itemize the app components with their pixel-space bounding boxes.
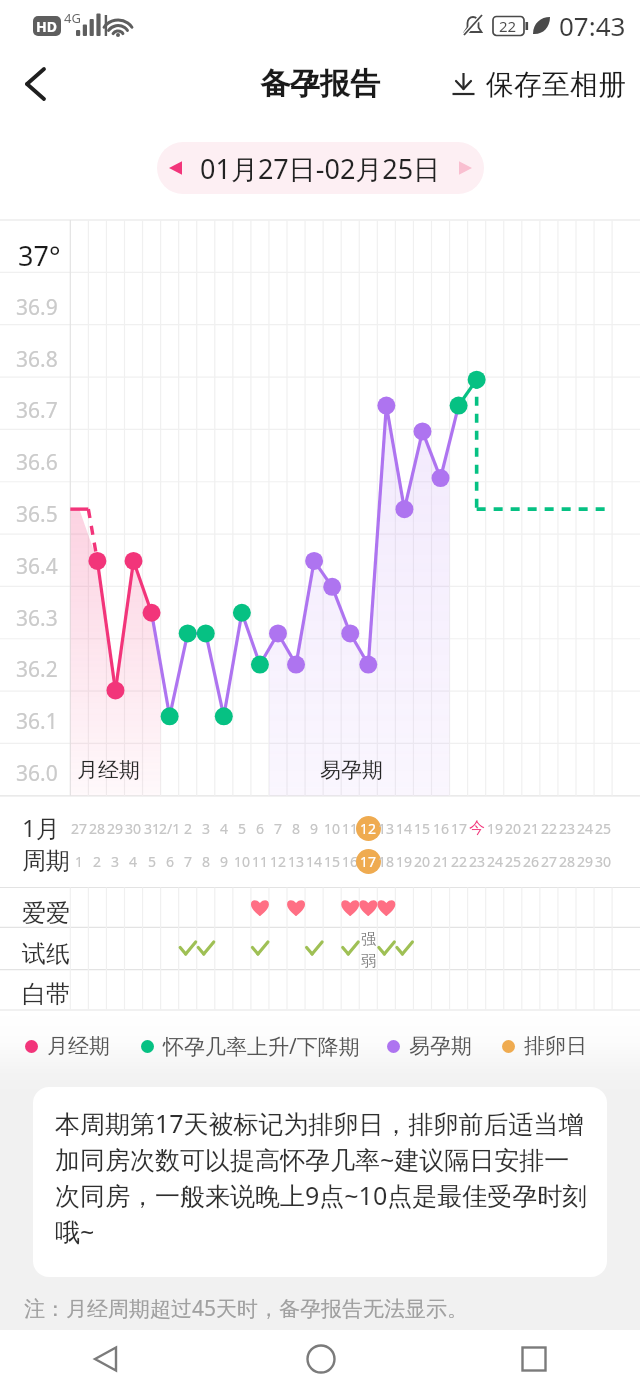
staticText: 36.3 bbox=[16, 604, 58, 633]
staticText: 30 bbox=[595, 852, 612, 871]
staticText: 易孕期 bbox=[320, 757, 383, 783]
staticText: 31 bbox=[144, 819, 161, 838]
staticText: 36.4 bbox=[16, 552, 58, 581]
staticText: 4 bbox=[220, 819, 229, 838]
staticText: 注：月经周期超过45天时，备孕报告无法显示。 bbox=[24, 1294, 469, 1323]
staticText: 白带 bbox=[22, 979, 70, 1009]
staticText: 36.9 bbox=[16, 293, 58, 322]
staticText: 8 bbox=[202, 852, 211, 871]
staticText: 5 bbox=[238, 819, 247, 838]
staticText: 7 bbox=[274, 819, 283, 838]
staticText: 8 bbox=[292, 819, 301, 838]
staticText: 36.7 bbox=[16, 396, 58, 425]
staticText: 20 bbox=[414, 852, 431, 871]
staticText: 7 bbox=[184, 852, 193, 871]
button[interactable]: Recents bbox=[427, 1330, 640, 1387]
staticText: 怀孕几率上升/下降期 bbox=[163, 1032, 360, 1061]
staticText: 5 bbox=[148, 852, 157, 871]
staticText: 3 bbox=[202, 819, 211, 838]
staticText: 27 bbox=[541, 852, 558, 871]
staticText: 24 bbox=[487, 852, 504, 871]
staticText: 25 bbox=[505, 852, 522, 871]
staticText: 30 bbox=[125, 819, 142, 838]
staticText: 12 bbox=[360, 819, 377, 838]
staticText: 22 bbox=[499, 16, 517, 36]
staticText: 36.2 bbox=[16, 655, 58, 684]
staticText: 01月27日-02月25日 bbox=[200, 150, 441, 187]
button[interactable]: 排卵日 bbox=[502, 1033, 587, 1059]
staticText: 16 bbox=[342, 852, 359, 871]
staticText: 弱 bbox=[361, 952, 376, 971]
staticText: 9 bbox=[310, 819, 319, 838]
staticText: 14 bbox=[306, 852, 323, 871]
staticText: 23 bbox=[559, 819, 576, 838]
staticText: 2 bbox=[93, 852, 102, 871]
staticText: 07:43 bbox=[559, 8, 626, 43]
staticText: 16 bbox=[433, 819, 450, 838]
staticText: 本周期第17天被标记为排卵日，排卵前后适当增加同房次数可以提高怀孕几率~建议隔日… bbox=[55, 1106, 590, 1249]
staticText: 6 bbox=[256, 819, 265, 838]
staticText: 37° bbox=[18, 237, 61, 273]
staticText: 15 bbox=[414, 819, 431, 838]
staticText: 13 bbox=[378, 819, 395, 838]
button[interactable]: Back bbox=[0, 1330, 214, 1387]
staticText: 36.8 bbox=[16, 345, 58, 374]
button[interactable]: 保存至相册 bbox=[448, 67, 628, 102]
staticText: 易孕期 bbox=[409, 1033, 472, 1059]
staticText: 26 bbox=[523, 852, 540, 871]
staticText: 36.0 bbox=[16, 759, 58, 788]
button[interactable]: Home bbox=[214, 1330, 427, 1387]
staticText: 20 bbox=[505, 819, 522, 838]
staticText: 36.5 bbox=[16, 500, 58, 529]
button[interactable]: 月经期 bbox=[25, 1033, 110, 1059]
staticText: 3 bbox=[111, 852, 120, 871]
staticText: 17 bbox=[360, 852, 377, 871]
staticText: 备孕报告 bbox=[260, 65, 380, 103]
staticText: 19 bbox=[487, 819, 504, 838]
staticText: 18 bbox=[378, 852, 395, 871]
staticText: 24 bbox=[577, 819, 594, 838]
staticText: 排卵日 bbox=[524, 1033, 587, 1059]
staticText: 21 bbox=[523, 819, 540, 838]
staticText: 11 bbox=[252, 852, 269, 871]
staticText: 月经期 bbox=[47, 1033, 110, 1059]
staticText: 试纸 bbox=[22, 939, 70, 969]
staticText: 19 bbox=[396, 852, 413, 871]
staticText: 2/1 bbox=[159, 819, 181, 838]
staticText: 10 bbox=[234, 852, 251, 871]
staticText: 2 bbox=[184, 819, 193, 838]
staticText: 36.6 bbox=[16, 448, 58, 477]
staticText: 21 bbox=[433, 852, 450, 871]
staticText: 22 bbox=[541, 819, 558, 838]
staticText: 4 bbox=[129, 852, 138, 871]
staticText: 14 bbox=[396, 819, 413, 838]
staticText: 29 bbox=[577, 852, 594, 871]
staticText: 4G bbox=[64, 9, 81, 27]
staticText: 17 bbox=[451, 819, 468, 838]
staticText: 36.1 bbox=[16, 707, 58, 736]
staticText: 10 bbox=[324, 819, 341, 838]
button[interactable]: 本周期第17天被标记为排卵日，排卵前后适当增加同房次数可以提高怀孕几率~建议隔日… bbox=[33, 1087, 607, 1277]
button[interactable]: 易孕期 bbox=[387, 1033, 472, 1059]
staticText: 25 bbox=[595, 819, 612, 838]
staticText: 22 bbox=[451, 852, 468, 871]
staticText: 月经期 bbox=[77, 757, 140, 783]
staticText: 28 bbox=[89, 819, 106, 838]
button[interactable]: 怀孕几率上升/下降期 bbox=[141, 1032, 360, 1061]
staticText: 爱爱 bbox=[22, 898, 70, 928]
staticText: 9 bbox=[220, 852, 229, 871]
staticText: 28 bbox=[559, 852, 576, 871]
staticText: 11 bbox=[342, 819, 359, 838]
staticText: 13 bbox=[288, 852, 305, 871]
staticText: 6 bbox=[166, 852, 175, 871]
staticText: 27 bbox=[71, 819, 88, 838]
staticText: 1 bbox=[75, 852, 84, 871]
staticText: 周期 bbox=[22, 846, 70, 876]
button[interactable]: 01月27日-02月25日 bbox=[157, 142, 484, 194]
staticText: 12 bbox=[270, 852, 287, 871]
staticText: 29 bbox=[107, 819, 124, 838]
staticText: 1月 bbox=[22, 811, 60, 844]
staticText: 15 bbox=[324, 852, 341, 871]
staticText: 强 bbox=[361, 930, 376, 949]
button[interactable]: Back bbox=[10, 58, 62, 110]
